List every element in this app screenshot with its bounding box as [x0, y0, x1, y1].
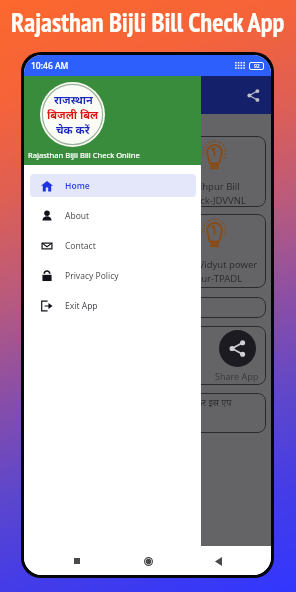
- staticText: About: [65, 210, 90, 222]
- staticText: चेक करें: [56, 122, 90, 137]
- button[interactable]: Home: [30, 174, 196, 197]
- staticText: Contact: [65, 240, 96, 252]
- button[interactable]: Contact: [30, 234, 196, 257]
- button[interactable]: ऊपर बटन दबाकर इस एप: [30, 393, 266, 433]
- staticText: राजस्थान: [54, 92, 93, 107]
- staticText: Jodhpur Bill: [188, 180, 240, 193]
- button[interactable]: Jodhpur Bill: [30, 136, 266, 207]
- staticText: 92: [254, 63, 260, 70]
- button[interactable]: Share: [243, 85, 263, 105]
- staticText: 10:46 AM: [31, 60, 69, 72]
- staticText: Privacy Policy: [65, 270, 119, 282]
- staticText: Jaipur Vidyut power: [170, 258, 258, 271]
- button[interactable]: Exit App: [30, 294, 196, 317]
- button[interactable]: Home: [139, 552, 157, 570]
- button[interactable]: [30, 297, 266, 318]
- button[interactable]: Share App: [30, 326, 266, 385]
- button[interactable]: Back: [209, 552, 227, 570]
- button[interactable]: Recents: [68, 552, 86, 570]
- button[interactable]: Jaipur Vidyut power: [30, 214, 266, 288]
- staticText: Rajasthan Bijli Bill Check Online: [28, 150, 140, 160]
- staticText: Exit App: [65, 300, 98, 312]
- staticText: बिजली बिल: [47, 107, 99, 122]
- staticText: ऊपर बटन दबाकर इस एप: [148, 396, 232, 408]
- staticText: Jaipur-TPADL: [185, 272, 243, 285]
- staticText: Rajasthan Bijli Bill Check App: [11, 5, 285, 39]
- staticText: Share App: [215, 370, 259, 382]
- button[interactable]: Privacy Policy: [30, 264, 196, 287]
- staticText: Check-JDVVNL: [183, 194, 246, 207]
- button[interactable]: About: [30, 204, 196, 227]
- staticText: Home: [65, 180, 90, 192]
